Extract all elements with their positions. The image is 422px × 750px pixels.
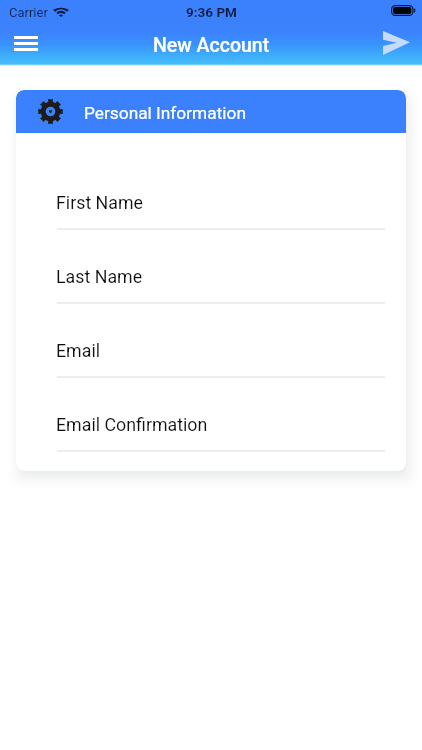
staticText: Last Name xyxy=(56,266,143,287)
button[interactable]: Personal Information xyxy=(16,90,406,133)
staticText: First Name xyxy=(56,192,144,213)
button[interactable]: First Name xyxy=(16,177,406,230)
button[interactable]: Menu xyxy=(0,24,51,64)
button[interactable]: Send xyxy=(372,24,422,64)
staticText: Personal Information xyxy=(84,103,246,123)
staticText: Email Confirmation xyxy=(56,414,208,435)
staticText: Carrier xyxy=(9,5,48,20)
button[interactable]: Email Confirmation xyxy=(16,399,406,452)
staticText: Email xyxy=(56,340,101,361)
staticText: New Account xyxy=(153,34,270,57)
button[interactable]: Last Name xyxy=(16,251,406,304)
button[interactable]: Email xyxy=(16,325,406,378)
staticText: 9:36 PM xyxy=(186,4,237,20)
